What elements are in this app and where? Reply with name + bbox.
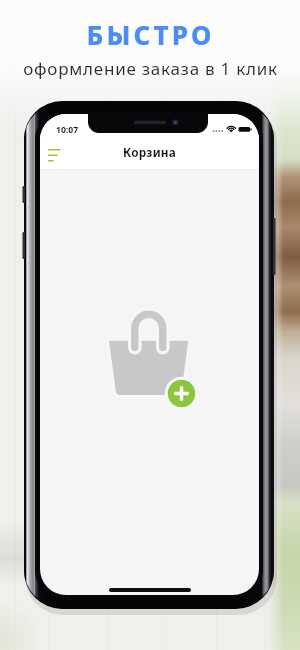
staticText: Корзина — [123, 144, 176, 160]
button[interactable]: Меню — [41, 141, 67, 167]
staticText: БЫСТРО — [86, 17, 215, 52]
staticText: 10:07 — [56, 124, 79, 136]
staticText: оформление заказа в 1 клик — [23, 57, 278, 80]
